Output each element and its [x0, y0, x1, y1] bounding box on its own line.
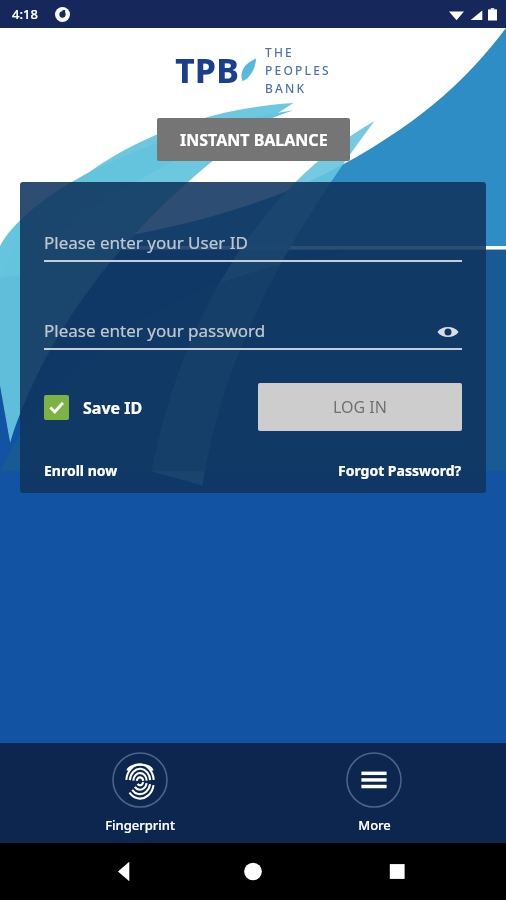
staticText: More	[358, 816, 391, 834]
button[interactable]: Enroll now	[44, 461, 118, 480]
staticText: PEOPLES	[265, 62, 331, 78]
button[interactable]: Save ID	[44, 395, 143, 420]
staticText: Forgot Password?	[338, 461, 462, 480]
staticText: 4:18	[12, 5, 38, 23]
staticText: INSTANT BALANCE	[180, 129, 328, 151]
staticText: TPB	[175, 47, 239, 93]
button[interactable]: Show password	[434, 318, 462, 346]
staticText: Enroll now	[44, 461, 118, 480]
staticText: Please enter your password	[44, 319, 266, 342]
button[interactable]: More	[338, 748, 410, 838]
staticText: BANK	[265, 80, 307, 96]
staticText: THE	[265, 44, 295, 60]
button[interactable]: Fingerprint	[97, 748, 183, 838]
staticText: Save ID	[83, 397, 143, 419]
button[interactable]: LOG IN	[258, 383, 462, 431]
button[interactable]: INSTANT BALANCE	[157, 118, 350, 161]
button[interactable]: Forgot Password?	[338, 461, 462, 480]
staticText: Please enter your User ID	[44, 231, 248, 254]
button[interactable]: Please enter your User ID	[44, 226, 462, 262]
staticText: Fingerprint	[105, 816, 175, 834]
staticText: LOG IN	[333, 396, 387, 418]
